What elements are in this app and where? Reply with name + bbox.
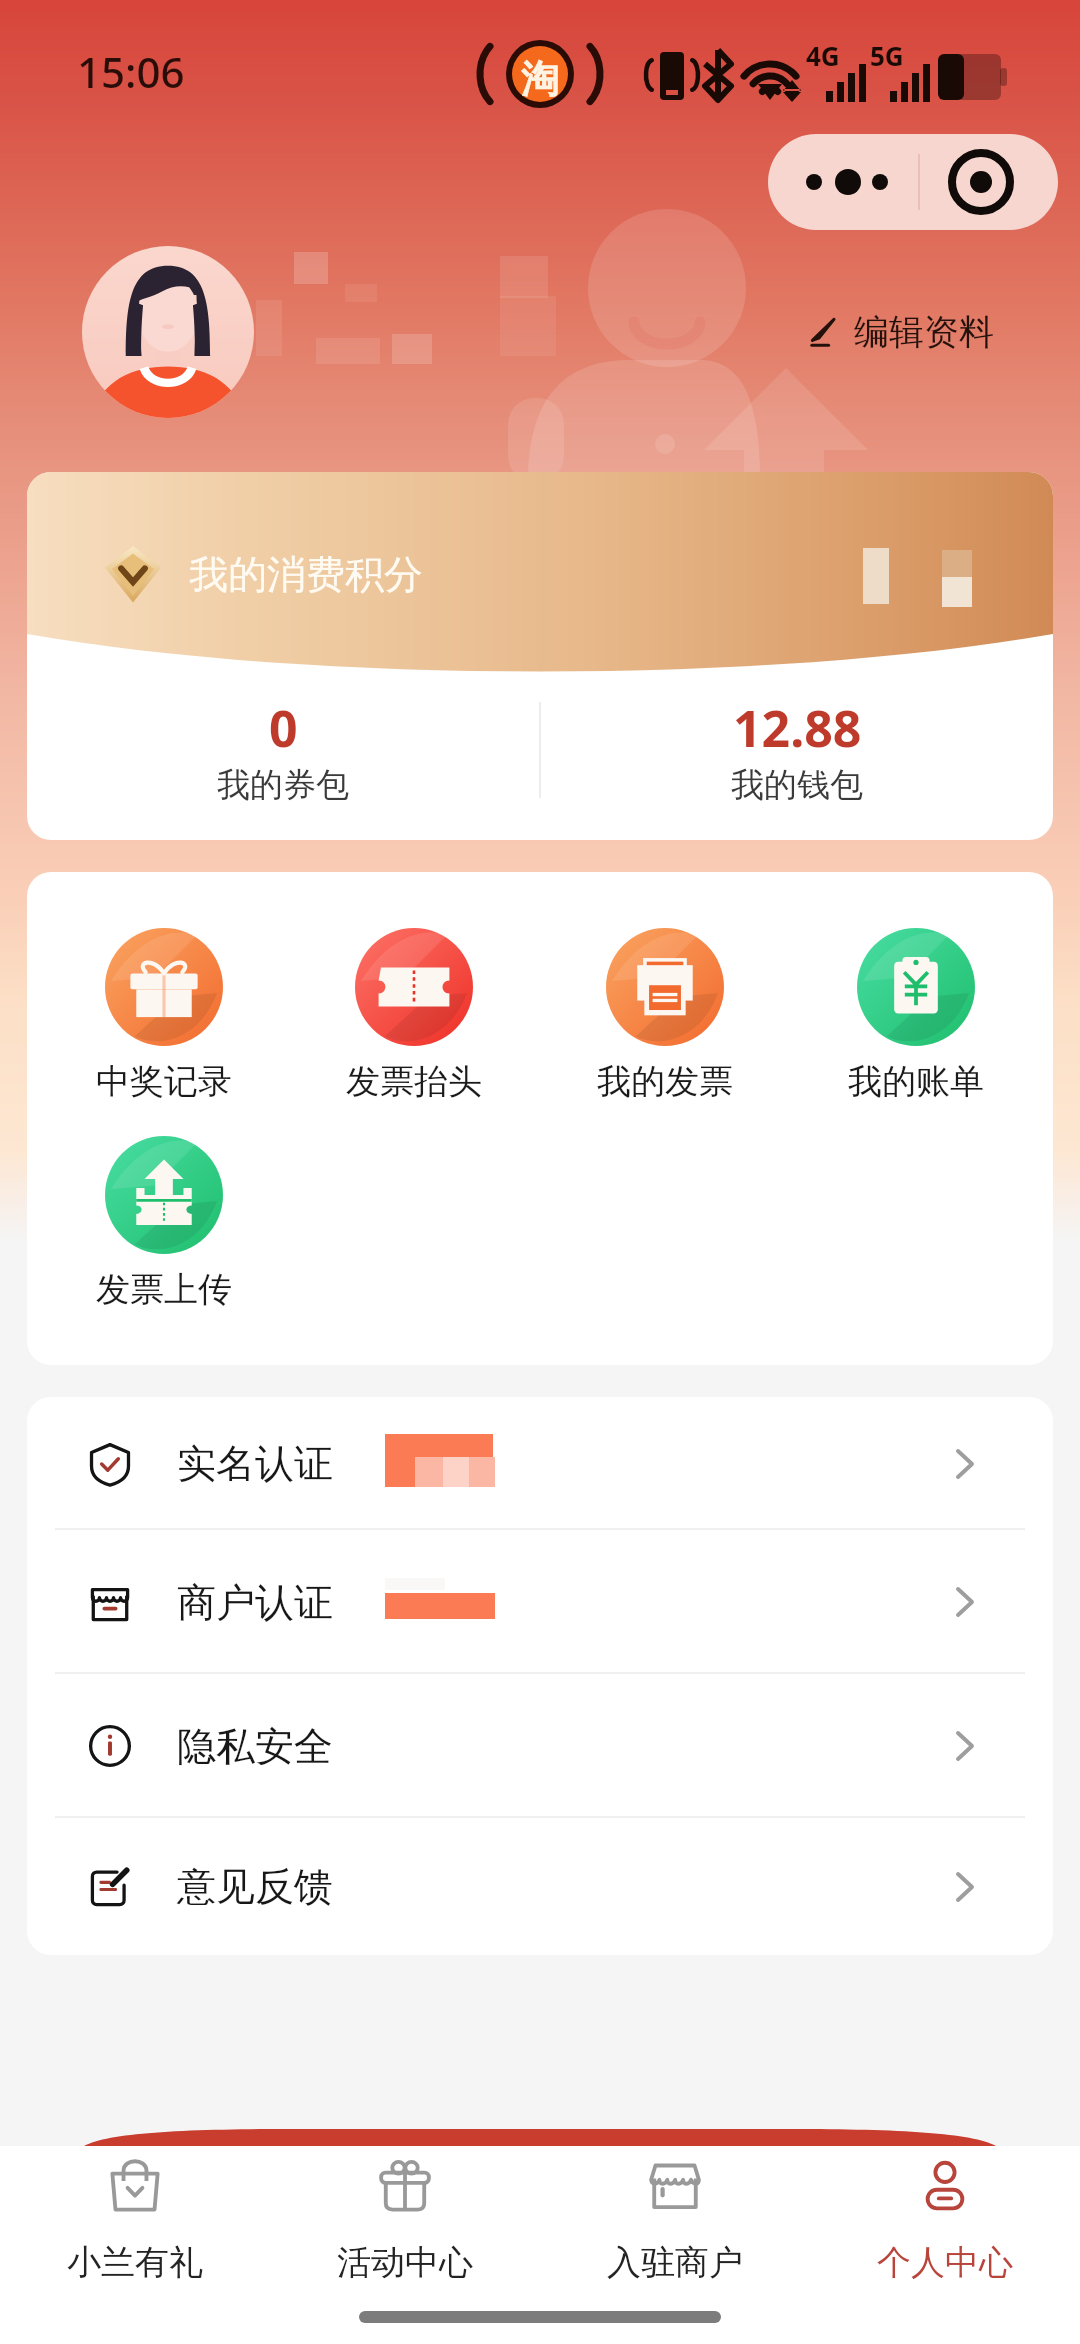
staticText: 我的账单	[848, 1060, 984, 1103]
staticText: 商户认证	[177, 1578, 333, 1627]
staticText: 活动中心	[337, 2241, 473, 2284]
staticText: 小兰有礼	[67, 2241, 203, 2284]
staticText: 12.88	[733, 694, 862, 762]
button[interactable]: 入驻商户	[540, 2155, 810, 2284]
staticText: 0	[269, 694, 298, 762]
staticText: 个人中心	[877, 2241, 1013, 2284]
button[interactable]: 发票抬头	[289, 928, 539, 1103]
button[interactable]: 意见反馈	[27, 1818, 1053, 1955]
staticText: 发票上传	[96, 1268, 232, 1311]
button[interactable]: 12.88	[541, 694, 1053, 806]
button[interactable]: 发票上传	[39, 1136, 289, 1311]
staticText: 4G	[806, 38, 840, 73]
staticText: 5G	[870, 38, 904, 73]
button[interactable]: 个人中心	[810, 2155, 1080, 2284]
staticText: 我的钱包	[731, 764, 863, 806]
button[interactable]: 中奖记录	[39, 928, 289, 1103]
button[interactable]: 0	[27, 694, 539, 806]
button[interactable]: 编辑资料	[810, 310, 994, 354]
button[interactable]: 活动中心	[270, 2155, 540, 2284]
staticText: 淘	[521, 55, 559, 103]
button[interactable]: 我的账单	[790, 928, 1041, 1103]
staticText: 中奖记录	[96, 1060, 232, 1103]
button[interactable]: More options	[768, 134, 1058, 230]
staticText: 意见反馈	[177, 1862, 333, 1911]
button[interactable]: 隐私安全	[27, 1674, 1053, 1818]
staticText: 我的券包	[217, 764, 349, 806]
staticText: 入驻商户	[607, 2241, 743, 2284]
staticText: 实名认证	[177, 1439, 333, 1488]
staticText: 我的消费积分	[189, 550, 423, 599]
staticText: 编辑资料	[854, 310, 994, 354]
staticText: 发票抬头	[346, 1060, 482, 1103]
staticText: 隐私安全	[177, 1722, 333, 1771]
button[interactable]: 商户认证	[27, 1530, 1053, 1674]
staticText: 我的发票	[597, 1060, 733, 1103]
button[interactable]: Avatar	[82, 246, 254, 418]
button[interactable]: 小兰有礼	[0, 2155, 270, 2284]
button[interactable]: 我的发票	[539, 928, 790, 1103]
staticText: 15:06	[77, 43, 185, 100]
button[interactable]: 实名认证	[27, 1397, 1053, 1530]
